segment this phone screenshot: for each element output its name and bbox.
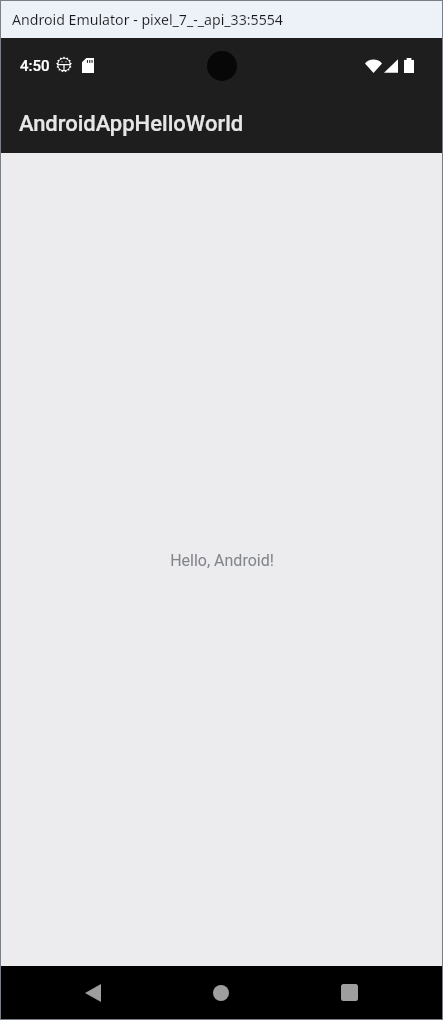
button[interactable]: Recent apps [321,966,377,1019]
staticText: AndroidAppHelloWorld [19,111,244,137]
staticText: Hello, Android! [170,551,274,570]
button[interactable]: Back [65,966,121,1019]
button[interactable]: Home [193,966,249,1019]
staticText: 4:50 [20,57,50,75]
staticText: Android Emulator - pixel_7_-_api_33:5554 [12,10,283,29]
